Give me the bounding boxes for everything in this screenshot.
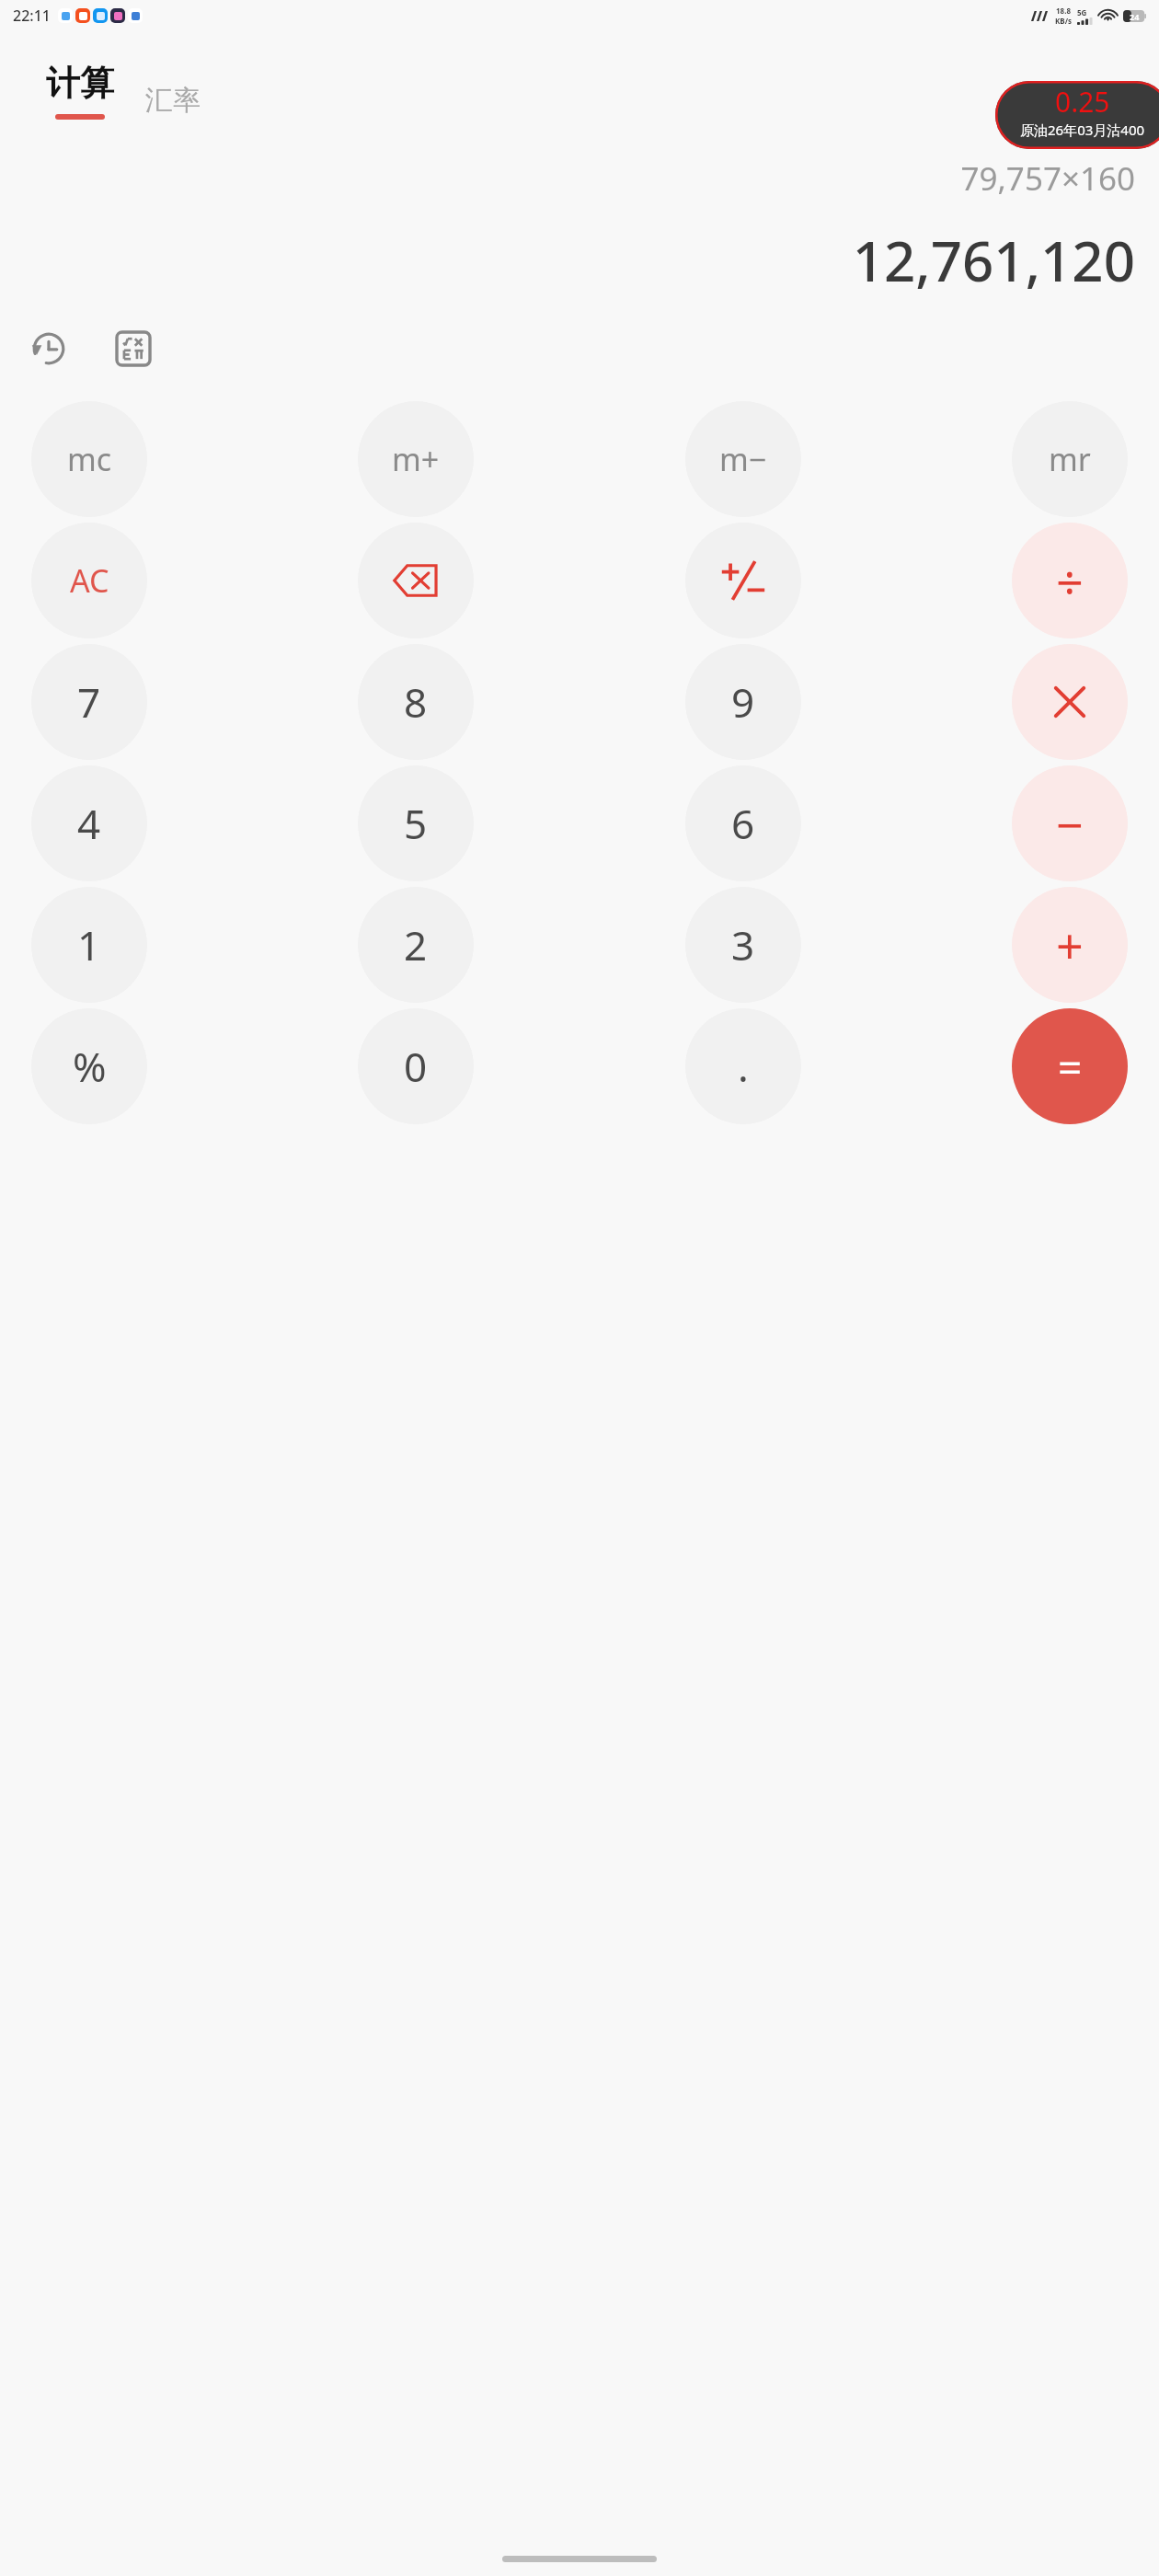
button[interactable]: 2	[358, 887, 474, 1003]
staticText: m+	[392, 438, 440, 480]
staticText: mc	[67, 438, 112, 480]
staticText: 12,761,120	[852, 223, 1135, 298]
staticText: 2	[404, 917, 428, 972]
button[interactable]: 3	[685, 887, 801, 1003]
button[interactable]: 0	[358, 1008, 474, 1124]
staticText: −	[1056, 791, 1084, 857]
staticText: 原油26年03月沽400	[1020, 121, 1145, 139]
button[interactable]: Backspace	[358, 523, 474, 638]
staticText: 5G	[1077, 7, 1087, 17]
button[interactable]: −	[1012, 765, 1128, 881]
staticText: .	[738, 1039, 749, 1094]
staticText: =	[1058, 1038, 1083, 1096]
staticText: 7	[77, 674, 101, 730]
staticText: 22:11	[13, 6, 51, 26]
button[interactable]: mr	[1012, 401, 1128, 517]
button[interactable]: 6	[685, 765, 801, 881]
button[interactable]: Multiply	[1012, 644, 1128, 760]
button[interactable]: +	[1012, 887, 1128, 1003]
staticText: 79,757×160	[960, 156, 1135, 201]
button[interactable]: %	[31, 1008, 147, 1124]
button[interactable]: 9	[685, 644, 801, 760]
staticText: 5	[404, 796, 428, 851]
button[interactable]: 1	[31, 887, 147, 1003]
staticText: m−	[719, 438, 767, 480]
button[interactable]: 8	[358, 644, 474, 760]
staticText: mr	[1049, 438, 1091, 480]
staticText: 6	[731, 796, 755, 851]
staticText: 3	[731, 917, 755, 972]
button[interactable]: m−	[685, 401, 801, 517]
staticText: ÷	[1056, 548, 1084, 614]
button[interactable]: =	[1012, 1008, 1128, 1124]
button[interactable]: 汇率	[142, 81, 204, 120]
button[interactable]: 4	[31, 765, 147, 881]
button[interactable]: Toggle sign	[685, 523, 801, 638]
button[interactable]: 计算	[42, 62, 118, 120]
button[interactable]: History	[24, 324, 74, 374]
staticText: 0	[404, 1039, 428, 1094]
button[interactable]: .	[685, 1008, 801, 1124]
staticText: 汇率	[145, 83, 201, 118]
staticText: KB/s	[1055, 16, 1072, 26]
button[interactable]: Scientific mode	[109, 324, 158, 374]
staticText: 24	[1130, 11, 1140, 22]
button[interactable]: 5	[358, 765, 474, 881]
button[interactable]: m+	[358, 401, 474, 517]
button[interactable]: AC	[31, 523, 147, 638]
staticText: +	[1056, 913, 1084, 978]
button[interactable]: ÷	[1012, 523, 1128, 638]
staticText: 4	[77, 796, 101, 851]
staticText: %	[73, 1039, 107, 1094]
staticText: 9	[731, 674, 755, 730]
staticText: AC	[70, 559, 109, 602]
button[interactable]: mc	[31, 401, 147, 517]
staticText: 18.8	[1056, 6, 1071, 16]
staticText: 8	[404, 674, 428, 730]
button[interactable]: 0.25	[995, 81, 1159, 149]
staticText: 0.25	[1055, 83, 1110, 121]
staticText: 计算	[46, 62, 114, 105]
staticText: 1	[77, 917, 101, 972]
button[interactable]: 7	[31, 644, 147, 760]
